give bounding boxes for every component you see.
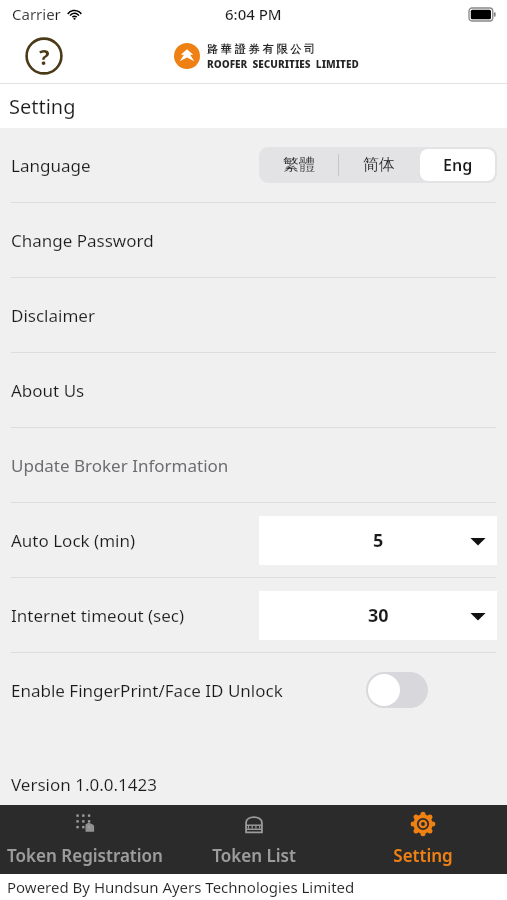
staticText: Version 1.0.0.1423 <box>11 773 157 796</box>
staticText: 简体 <box>363 155 395 175</box>
staticText: Setting <box>393 844 453 867</box>
staticText: Token List <box>212 844 296 867</box>
staticText: 5 <box>373 528 384 553</box>
staticText: About Us <box>11 379 85 402</box>
button[interactable]: Token Registration <box>0 805 169 874</box>
button[interactable]: Enable FingerPrint Face ID Unlock toggle <box>366 672 428 708</box>
staticText: Update Broker Information <box>11 454 229 477</box>
staticText: Disclaimer <box>11 304 95 327</box>
button[interactable]: 简体 <box>339 147 418 183</box>
staticText: Eng <box>443 154 473 176</box>
button[interactable]: Disclaimer <box>0 278 507 352</box>
staticText: Auto Lock (min) <box>11 529 136 552</box>
button[interactable]: Enable FingerPrint/Face ID Unlock <box>0 653 507 727</box>
button[interactable]: About Us <box>0 353 507 427</box>
staticText: 路 華 證 券 有 限 公 司 <box>207 41 316 56</box>
staticText: Carrier <box>12 4 61 24</box>
button[interactable]: 30 <box>259 591 497 640</box>
staticText: ? <box>39 41 50 71</box>
staticText: Powered By Hundsun Ayers Technologies Li… <box>7 877 355 897</box>
staticText: Setting <box>9 93 76 120</box>
button[interactable]: 繁體 <box>259 147 338 183</box>
staticText: ROOFER SECURITIES LIMITED <box>207 57 359 71</box>
staticText: Internet timeout (sec) <box>11 604 185 627</box>
button[interactable]: Eng <box>420 149 495 181</box>
staticText: 6:04 PM <box>225 4 282 24</box>
staticText: Language <box>11 154 91 177</box>
button[interactable]: Setting <box>338 805 507 874</box>
button[interactable]: Change Password <box>0 203 507 277</box>
button[interactable]: Help <box>22 34 66 78</box>
staticText: 繁體 <box>283 155 315 175</box>
button[interactable]: 5 <box>259 516 497 565</box>
staticText: Token Registration <box>7 844 163 867</box>
staticText: Enable FingerPrint/Face ID Unlock <box>11 679 283 702</box>
button[interactable]: Update Broker Information <box>0 428 507 502</box>
button[interactable]: Token List <box>169 805 338 874</box>
staticText: Change Password <box>11 229 154 252</box>
staticText: 30 <box>368 603 389 628</box>
